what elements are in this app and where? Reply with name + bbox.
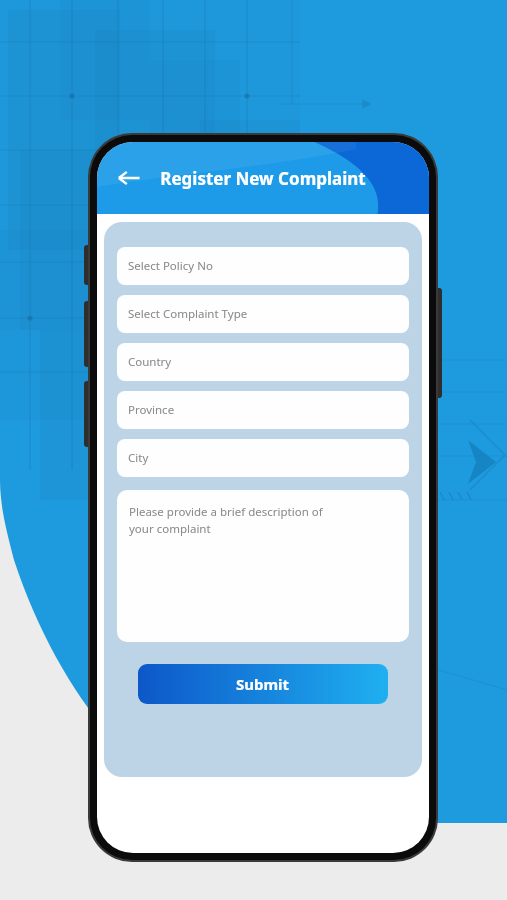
button[interactable]: Please provide a brief description of yo…	[117, 490, 409, 642]
staticText: Country	[128, 354, 172, 370]
staticText: Select Complaint Type	[128, 306, 248, 322]
button[interactable]: City	[117, 439, 409, 477]
staticText: Register New Complaint	[160, 167, 366, 190]
button[interactable]: Submit	[138, 664, 388, 704]
button[interactable]: Select Complaint Type	[117, 295, 409, 333]
button[interactable]: Select Policy No	[117, 247, 409, 285]
staticText: Select Policy No	[128, 258, 213, 274]
staticText: City	[128, 450, 149, 466]
staticText: Please provide a brief description of yo…	[129, 504, 323, 537]
button[interactable]: Country	[117, 343, 409, 381]
button[interactable]: Province	[117, 391, 409, 429]
staticText: Submit	[236, 674, 290, 694]
staticText: Province	[128, 402, 175, 418]
button[interactable]: Back	[107, 156, 151, 200]
